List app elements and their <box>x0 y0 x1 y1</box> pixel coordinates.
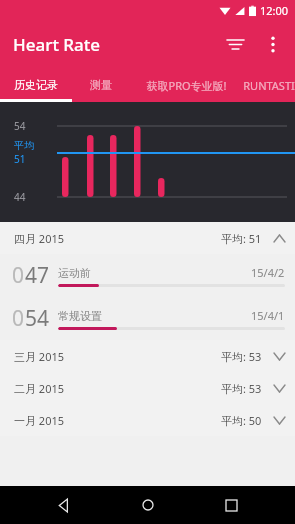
button[interactable]: Recent apps <box>211 486 251 524</box>
staticText: 54 <box>25 304 50 333</box>
staticText: 平均: 50 <box>221 413 262 428</box>
staticText: 0 <box>12 261 25 290</box>
button[interactable]: 0 <box>0 254 295 297</box>
staticText: 测量 <box>90 78 112 92</box>
staticText: 运动前 <box>58 266 91 280</box>
staticText: 平均: 51 <box>221 231 262 246</box>
staticText: 44 <box>14 190 26 204</box>
staticText: 常规设置 <box>58 309 102 323</box>
staticText: 15/4/1 <box>251 308 285 323</box>
staticText: Heart Rate <box>13 33 101 56</box>
staticText: 平均: 53 <box>221 349 262 364</box>
staticText: 平均: 53 <box>221 381 262 396</box>
button[interactable]: 一月 2015 <box>0 404 295 436</box>
button[interactable]: 获取PRO专业版! <box>130 68 242 102</box>
button[interactable]: More options <box>255 26 291 62</box>
staticText: 获取PRO专业版! <box>146 78 227 93</box>
staticText: RUNTASTI <box>243 78 295 93</box>
button[interactable]: 历史记录 <box>0 68 72 102</box>
staticText: 二月 2015 <box>14 381 65 396</box>
staticText: 54 <box>14 119 26 133</box>
staticText: 51 <box>14 152 26 166</box>
staticText: 15/4/2 <box>251 265 285 280</box>
staticText: 一月 2015 <box>14 413 65 428</box>
staticText: 三月 2015 <box>14 349 65 364</box>
button[interactable]: RUNTASTI <box>242 68 295 102</box>
button[interactable]: Filter <box>215 24 255 64</box>
button[interactable]: Home <box>128 486 168 524</box>
staticText: 历史记录 <box>14 78 58 92</box>
button[interactable]: 测量 <box>72 68 130 102</box>
staticText: 47 <box>25 261 50 290</box>
staticText: 四月 2015 <box>14 231 65 246</box>
staticText: 平均 <box>14 139 34 152</box>
staticText: 0 <box>12 304 25 333</box>
button[interactable]: Back <box>44 486 84 524</box>
button[interactable]: 四月 2015 <box>0 222 295 254</box>
button[interactable]: 二月 2015 <box>0 372 295 404</box>
button[interactable]: 0 <box>0 297 295 340</box>
staticText: 12:00 <box>260 3 289 18</box>
button[interactable]: 三月 2015 <box>0 340 295 372</box>
